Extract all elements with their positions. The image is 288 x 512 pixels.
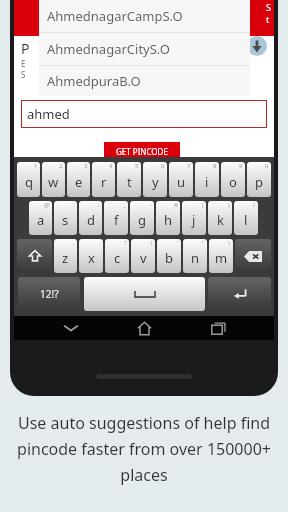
button[interactable]: 8	[195, 162, 219, 197]
staticText: r	[101, 173, 107, 191]
staticText: "	[202, 239, 205, 247]
button[interactable]: AhmedpuraB.O	[39, 66, 250, 96]
staticText: ahmed	[27, 105, 70, 123]
staticText: P	[21, 39, 30, 58]
staticText: o	[229, 173, 237, 191]
staticText: 7	[187, 162, 191, 170]
staticText: u	[177, 173, 186, 191]
button[interactable]: AhmednagarCityS.O	[39, 33, 250, 65]
staticText: !	[151, 239, 153, 247]
staticText: 5	[135, 162, 139, 170]
button[interactable]: :	[79, 201, 102, 235]
staticText: y	[152, 173, 159, 191]
staticText: g	[138, 211, 146, 229]
staticText: ?	[124, 239, 127, 247]
staticText: AhmedpuraB.O	[47, 72, 141, 90]
staticText: 9	[239, 162, 243, 170]
staticText: f	[114, 211, 119, 229]
staticText: t	[127, 173, 132, 191]
button[interactable]: Recents	[201, 316, 235, 340]
button[interactable]: 5	[117, 162, 141, 197]
staticText: 2	[59, 162, 63, 170]
staticText: l	[244, 211, 248, 229]
button[interactable]: ,	[54, 239, 77, 273]
staticText: .	[99, 239, 101, 247]
button[interactable]: )	[208, 201, 232, 235]
button[interactable]: ahmed	[21, 100, 267, 128]
button[interactable]: (	[182, 201, 206, 235]
button[interactable]: Back	[54, 316, 88, 340]
button[interactable]: 3	[67, 162, 90, 197]
staticText: 12!?	[40, 287, 59, 301]
staticText: n	[191, 249, 200, 267]
staticText: '	[177, 239, 179, 247]
button[interactable]: 2	[42, 162, 65, 197]
staticText: )	[228, 201, 230, 209]
staticText: /	[253, 201, 256, 209]
staticText: e	[75, 173, 83, 191]
button[interactable]: 6	[143, 162, 167, 197]
staticText: E	[21, 58, 26, 69]
button[interactable]: !	[131, 239, 155, 273]
staticText: c	[114, 249, 121, 267]
staticText: \	[228, 239, 231, 247]
button[interactable]: Backspace	[235, 239, 271, 273]
staticText: p	[255, 173, 263, 191]
staticText: 8	[213, 162, 217, 170]
staticText: ,	[73, 239, 75, 247]
button[interactable]: 0	[247, 162, 271, 197]
staticText: S	[21, 69, 26, 80]
staticText: d	[87, 211, 95, 229]
button[interactable]: "	[183, 239, 207, 273]
button[interactable]: /	[234, 201, 258, 235]
staticText: t	[266, 13, 270, 25]
button[interactable]: 7	[169, 162, 193, 197]
staticText: GET PINCODE	[116, 146, 168, 157]
staticText: 1	[34, 162, 38, 170]
button[interactable]: '	[157, 239, 181, 273]
button[interactable]: Home	[127, 316, 161, 340]
button[interactable]: Shift	[17, 239, 52, 273]
button[interactable]: #	[156, 201, 180, 235]
button[interactable]: .	[79, 239, 103, 273]
button[interactable]: Space	[84, 277, 205, 311]
button[interactable]: 12!?	[18, 277, 80, 311]
staticText: a	[37, 211, 45, 229]
button[interactable]: Enter	[208, 277, 271, 311]
button[interactable]: _	[104, 201, 128, 235]
staticText: AhmednagarCampS.O	[47, 7, 183, 25]
staticText: _	[123, 201, 126, 209]
button[interactable]: GET PINCODE	[104, 142, 180, 164]
staticText: x	[88, 249, 95, 267]
button[interactable]: -	[130, 201, 154, 235]
staticText: j	[192, 211, 196, 229]
staticText: S	[266, 1, 271, 13]
staticText: m	[215, 249, 228, 267]
button[interactable]: :	[54, 201, 77, 235]
staticText: @	[44, 201, 50, 209]
staticText: :	[73, 201, 75, 209]
staticText: b	[165, 249, 173, 267]
staticText: q	[25, 173, 33, 191]
staticText: AhmednagarCityS.O	[47, 40, 170, 58]
button[interactable]: \	[209, 239, 233, 273]
staticText: z	[62, 249, 69, 267]
staticText: h	[164, 211, 173, 229]
staticText: v	[140, 249, 147, 267]
button[interactable]: Download	[247, 36, 267, 56]
staticText: 4	[109, 162, 113, 170]
staticText: w	[48, 173, 59, 191]
staticText: 6	[161, 162, 165, 170]
button[interactable]: 4	[92, 162, 115, 197]
staticText: :	[98, 201, 100, 209]
button[interactable]: 9	[221, 162, 245, 197]
button[interactable]: @	[29, 201, 52, 235]
staticText: 3	[84, 162, 88, 170]
button[interactable]: 1	[17, 162, 40, 197]
button[interactable]: ?	[105, 239, 129, 273]
staticText: Use auto suggestions of help find pincod…	[14, 412, 274, 486]
staticText: -	[150, 201, 152, 209]
button[interactable]: AhmednagarCampS.O	[39, 0, 250, 32]
staticText: s	[62, 211, 69, 229]
staticText: 0	[265, 162, 269, 170]
